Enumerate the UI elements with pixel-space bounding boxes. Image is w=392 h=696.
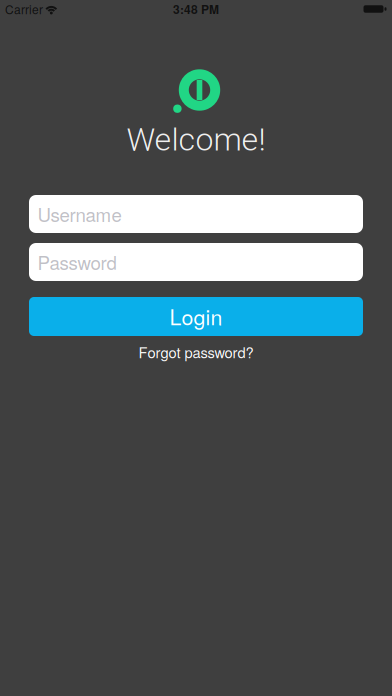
staticText: Username: [37, 201, 121, 227]
button[interactable]: Login: [29, 297, 363, 336]
button[interactable]: Username: [29, 195, 363, 233]
staticText: Welcome!: [126, 121, 265, 158]
button[interactable]: Password: [29, 243, 363, 281]
button[interactable]: Forgot password?: [130, 342, 261, 362]
staticText: 3:48 PM: [173, 0, 219, 18]
staticText: Forgot password?: [138, 341, 253, 362]
staticText: Login: [169, 301, 222, 331]
staticText: Carrier: [5, 0, 43, 18]
staticText: Password: [37, 249, 116, 275]
